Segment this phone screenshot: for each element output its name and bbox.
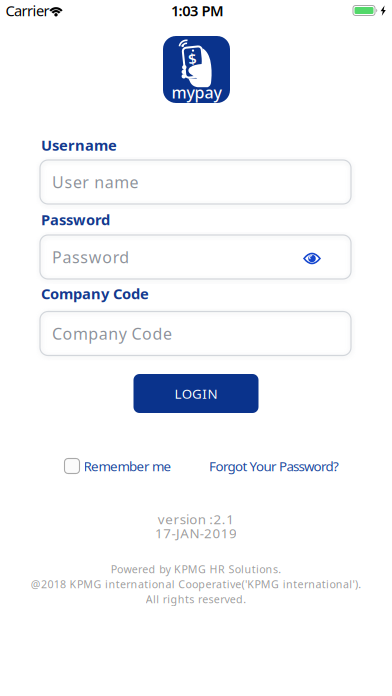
staticText: Company Code [52, 323, 167, 344]
staticText: version :2.1 [158, 510, 234, 528]
staticText: LOGIN [175, 385, 217, 402]
textField[interactable]: User name [52, 171, 332, 193]
staticText: 1:03 PM [171, 1, 224, 20]
staticText: Company Code [41, 284, 149, 303]
button[interactable]: LOGIN [133, 374, 258, 413]
staticText: Password [52, 246, 126, 268]
staticText: $ [189, 49, 197, 68]
staticText: User name [52, 171, 135, 193]
button[interactable]: Forgot Your Password? [209, 457, 339, 475]
button[interactable]: Show password [295, 244, 329, 273]
staticText: User name [52, 171, 139, 193]
staticText: Password [52, 246, 129, 268]
textField[interactable]: Password [52, 246, 332, 268]
staticText: 17-JAN-2019 [155, 524, 237, 542]
staticText: Company Code [52, 323, 172, 344]
button[interactable]: Remember me [64, 457, 171, 475]
staticText: Forgot Your Password? [209, 457, 339, 475]
staticText: Username [41, 135, 117, 155]
textField[interactable]: Company Code [52, 323, 332, 344]
staticText: mypay [171, 82, 221, 103]
staticText: Remember me [83, 457, 171, 475]
staticText: @2018 KPMG international Cooperative('KP… [31, 577, 361, 591]
staticText: All rights reserved. [146, 592, 246, 606]
staticText: Powered by KPMG HR Solutions. [111, 562, 281, 576]
staticText: Password [41, 210, 110, 229]
staticText: Carrier [5, 1, 49, 20]
